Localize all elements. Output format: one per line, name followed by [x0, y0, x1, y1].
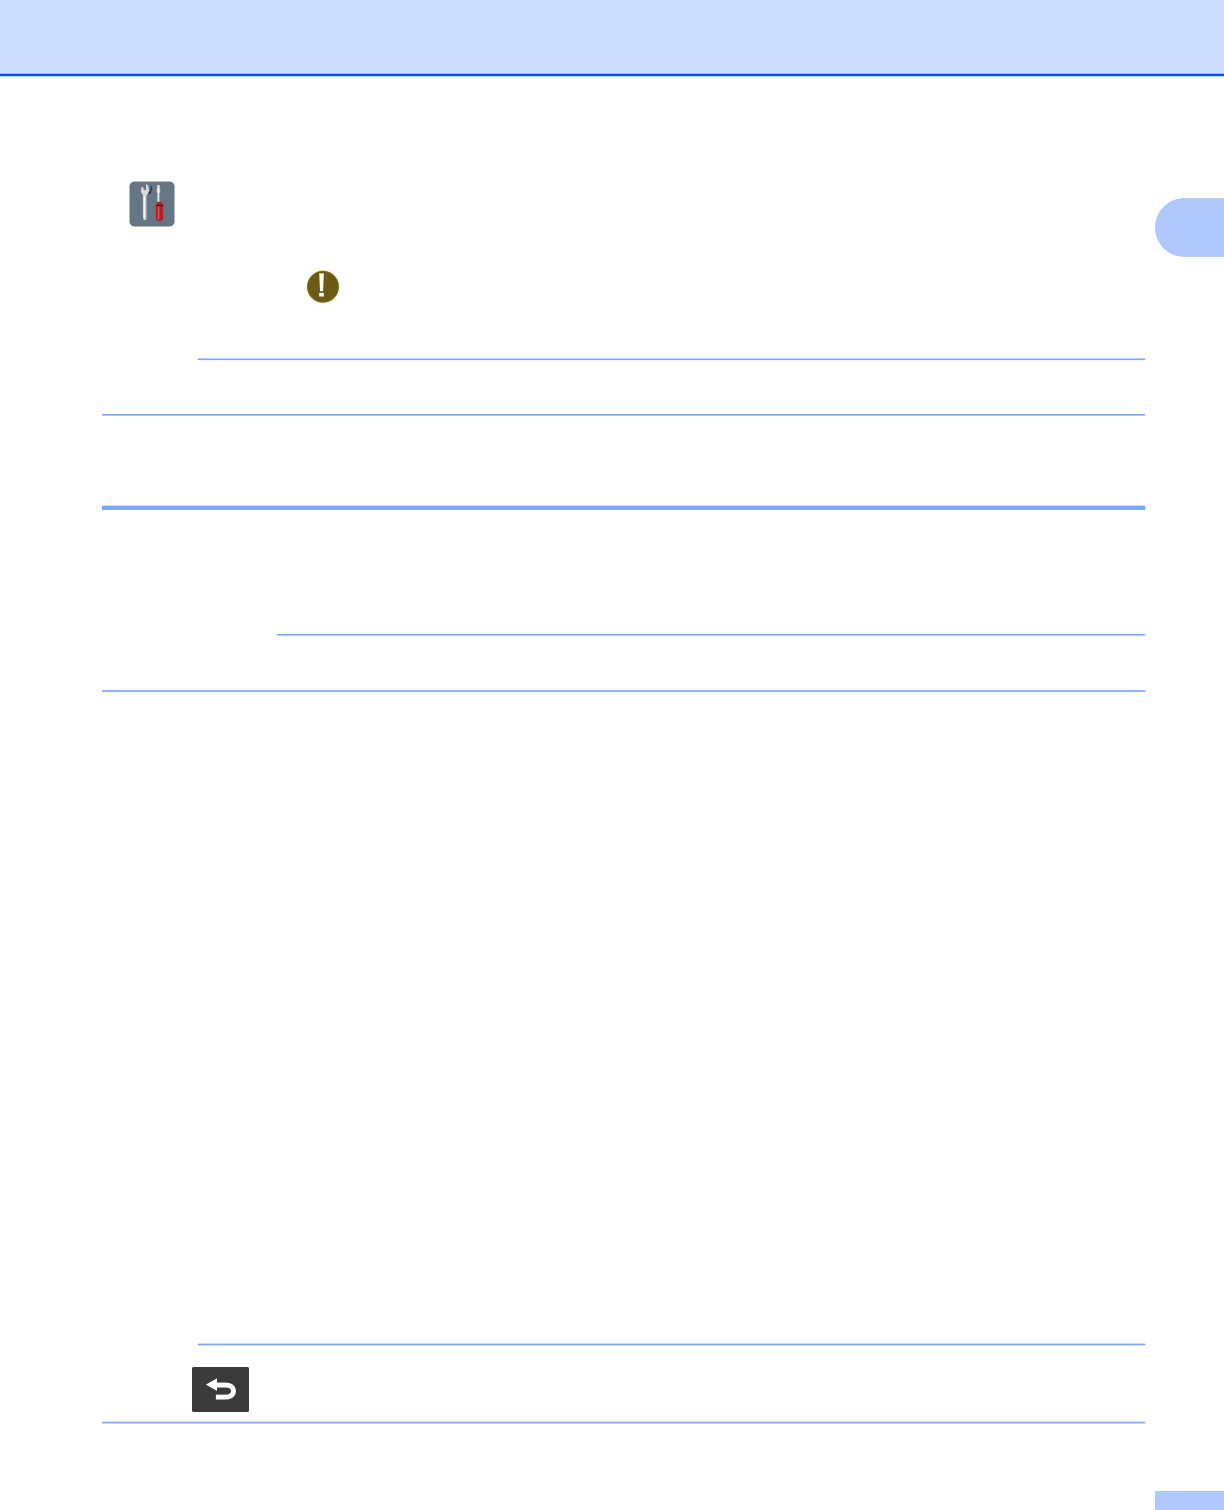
button[interactable]: Back [192, 1367, 249, 1412]
button[interactable]: Maintenance settings [129, 181, 174, 226]
